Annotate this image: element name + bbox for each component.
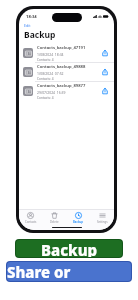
staticText: Contacts_backup_49888	[37, 64, 86, 70]
button[interactable]: Share or Restore	[7, 262, 131, 281]
staticText: Contacts: 4	[37, 77, 54, 81]
button[interactable]: Share backup	[100, 48, 110, 58]
button[interactable]: Delete	[42, 210, 66, 226]
staticText: Contacts	[25, 220, 37, 224]
staticText: 1/08/2024 18:34	[37, 52, 64, 57]
staticText: Contacts_backup_47191	[37, 45, 86, 51]
staticText: Share or Restore	[7, 262, 131, 281]
button[interactable]: Contacts_backup_47191	[19, 44, 114, 62]
button[interactable]: Contacts_backup_49888	[19, 63, 114, 81]
button[interactable]: Backup	[66, 210, 90, 226]
button[interactable]: Contacts	[19, 210, 42, 226]
button[interactable]: Share backup	[100, 67, 110, 77]
staticText: Contacts: 4	[37, 58, 54, 62]
staticText: Backup	[73, 220, 84, 224]
staticText: Contacts_backup_89877	[37, 83, 86, 89]
staticText: Settings	[97, 220, 108, 224]
button[interactable]: Settings	[90, 210, 114, 226]
button[interactable]: Backup	[16, 240, 122, 257]
button[interactable]: Edit	[24, 23, 31, 28]
button[interactable]: Contacts_backup_89877	[19, 82, 114, 100]
staticText: 1/08/2024 07:52	[37, 71, 64, 76]
staticText: Delete	[50, 220, 59, 224]
staticText: Backup	[41, 240, 98, 257]
staticText: Contacts: 4	[37, 96, 54, 100]
button[interactable]: Share backup	[100, 86, 110, 96]
staticText: Edit	[24, 23, 31, 28]
staticText: Backup	[24, 29, 56, 41]
staticText: 18:34	[26, 14, 37, 20]
staticText: 29/07/2024 16:39	[37, 90, 66, 95]
